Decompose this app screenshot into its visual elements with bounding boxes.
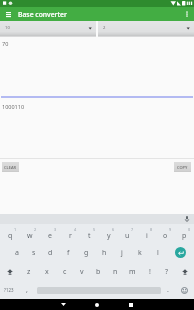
staticText: h [102, 248, 107, 258]
staticText: g [84, 248, 89, 258]
staticText: 9 [169, 227, 172, 232]
staticText: i [146, 231, 148, 241]
button[interactable]: Open navigation drawer [1, 7, 15, 21]
staticText: u [125, 231, 130, 241]
button[interactable]: v [73, 262, 90, 281]
button[interactable]: 8 [137, 224, 156, 243]
button[interactable]: j [113, 243, 131, 262]
button[interactable]: s [25, 243, 42, 262]
button[interactable]: 6 [99, 224, 118, 243]
staticText: 1000110 [2, 103, 25, 110]
button[interactable]: Enter [167, 243, 194, 262]
button[interactable]: z [20, 262, 38, 281]
button[interactable]: , [18, 281, 36, 299]
staticText: v [80, 267, 84, 277]
button[interactable]: ? [158, 262, 175, 281]
button[interactable]: g [77, 243, 95, 262]
staticText: 2 [34, 227, 37, 232]
button[interactable]: More options [180, 7, 194, 21]
button[interactable]: 2 [98, 21, 194, 37]
staticText: o [163, 231, 168, 241]
button[interactable]: n [107, 262, 124, 281]
staticText: m [129, 267, 136, 277]
staticText: x [45, 267, 49, 277]
button[interactable]: 0 [175, 224, 194, 243]
button[interactable]: Back [46, 299, 80, 310]
staticText: 10 [5, 25, 10, 31]
button[interactable]: c [56, 262, 73, 281]
staticText: n [113, 267, 118, 277]
button[interactable]: Recent apps [114, 299, 148, 310]
button[interactable]: x [38, 262, 56, 281]
button[interactable]: 9 [156, 224, 175, 243]
staticText: q [8, 231, 13, 241]
button[interactable]: h [95, 243, 113, 262]
button[interactable]: Home [80, 299, 114, 310]
staticText: 1 [14, 227, 17, 232]
button[interactable]: . [162, 281, 174, 299]
staticText: b [96, 267, 101, 277]
staticText: ?123 [4, 287, 14, 293]
button[interactable]: l [149, 243, 167, 262]
staticText: 7 [131, 227, 134, 232]
staticText: k [138, 248, 142, 258]
button[interactable]: 2 [20, 224, 40, 243]
staticText: c [63, 267, 67, 277]
button[interactable]: 1 [0, 224, 20, 243]
staticText: w [27, 231, 33, 241]
staticText: COPY [177, 165, 188, 170]
button[interactable]: f [59, 243, 77, 262]
staticText: CLEAR [4, 165, 17, 170]
staticText: l [157, 248, 159, 258]
button[interactable]: COPY [174, 162, 191, 172]
staticText: 3 [54, 227, 57, 232]
staticText: r [69, 231, 72, 241]
button[interactable]: 5 [80, 224, 99, 243]
button[interactable]: ?123 [0, 281, 18, 299]
staticText: z [27, 267, 31, 277]
staticText: 5 [93, 227, 96, 232]
staticText: ? [165, 267, 169, 277]
button[interactable]: Backspace [175, 262, 194, 281]
staticText: j [121, 248, 123, 258]
staticText: 6 [112, 227, 115, 232]
staticText: 70 [2, 40, 9, 47]
staticText: a [15, 248, 19, 258]
button[interactable]: 10 [0, 21, 96, 37]
staticText: 4 [74, 227, 77, 232]
button[interactable]: m [124, 262, 141, 281]
staticText: , [26, 285, 28, 295]
button[interactable]: b [90, 262, 107, 281]
staticText: . [167, 285, 169, 295]
button[interactable]: 7 [118, 224, 137, 243]
staticText: 8 [150, 227, 153, 232]
button[interactable]: Emoji [174, 281, 194, 299]
staticText: 2 [103, 25, 106, 31]
button[interactable]: a [8, 243, 25, 262]
staticText: f [67, 248, 70, 258]
button[interactable]: CLEAR [2, 162, 19, 172]
button[interactable]: k [131, 243, 149, 262]
button[interactable]: ! [141, 262, 158, 281]
staticText: d [48, 248, 53, 258]
button[interactable]: Shift [0, 262, 20, 281]
staticText: t [88, 231, 91, 241]
staticText: 0 [188, 227, 191, 232]
button[interactable]: d [42, 243, 59, 262]
staticText: s [32, 248, 36, 258]
staticText: Base converter [18, 10, 67, 19]
button[interactable]: 4 [60, 224, 80, 243]
staticText: e [48, 231, 52, 241]
staticText: ! [149, 267, 151, 277]
button[interactable]: 3 [40, 224, 60, 243]
staticText: y [107, 231, 111, 241]
staticText: p [182, 231, 187, 241]
